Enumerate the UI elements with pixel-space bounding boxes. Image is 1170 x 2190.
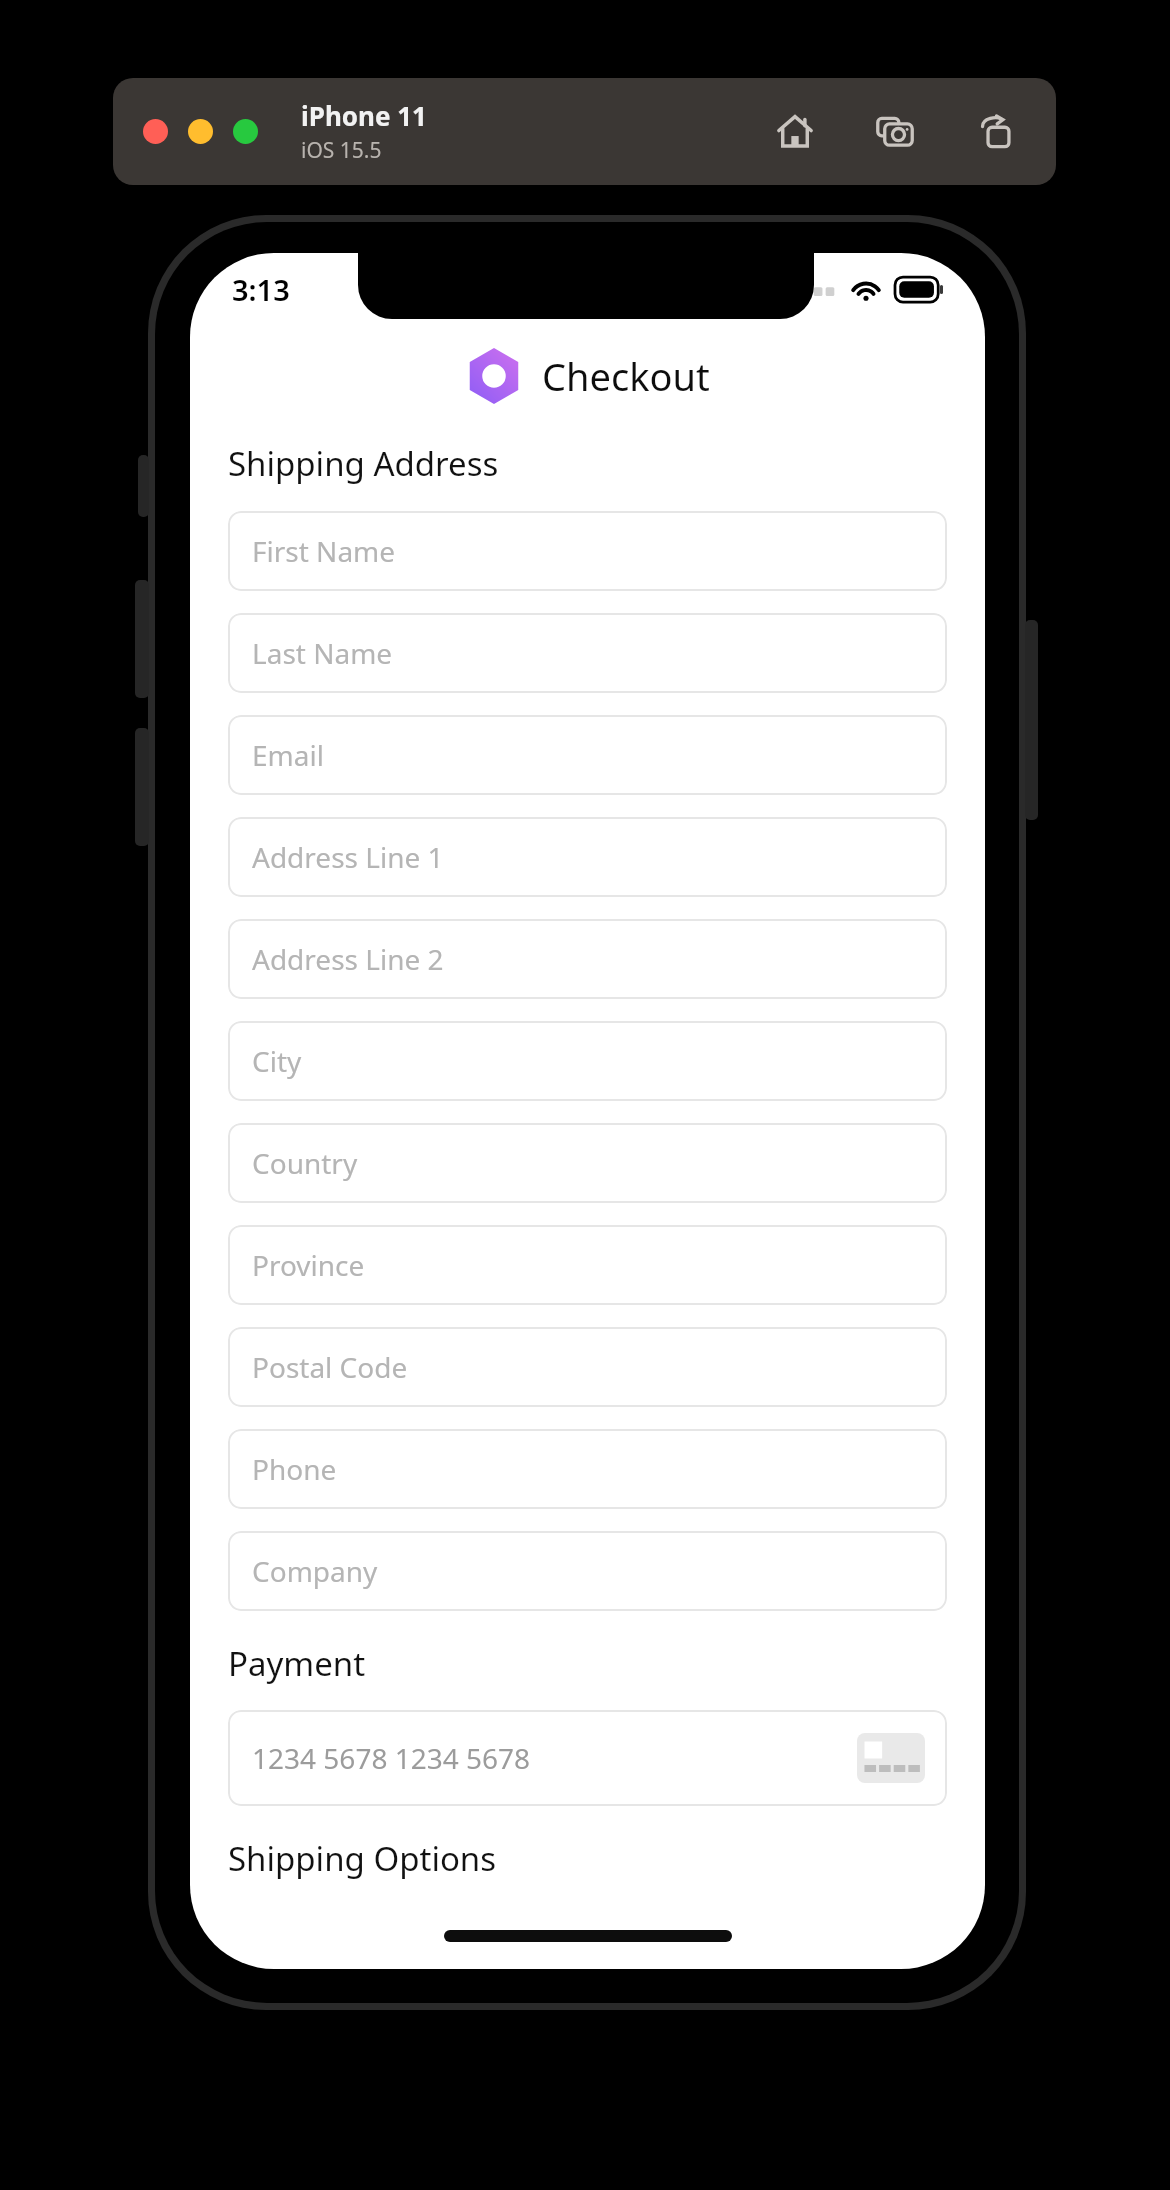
button[interactable]: Rotate [964, 101, 1026, 163]
staticText: Address Line 1 [252, 838, 444, 876]
staticText: Email [252, 736, 324, 774]
staticText: City [252, 1042, 302, 1080]
staticText: Postal Code [252, 1348, 408, 1386]
staticText: iOS 15.5 [301, 136, 382, 165]
button[interactable]: Postal Code [228, 1327, 947, 1407]
staticText: iPhone 11 [301, 98, 427, 133]
button[interactable]: Email [228, 715, 947, 795]
staticText: Checkout [542, 350, 710, 402]
button[interactable]: Address Line 1 [228, 817, 947, 897]
button[interactable]: Address Line 2 [228, 919, 947, 999]
staticText: First Name [252, 532, 396, 570]
staticText: Province [252, 1246, 365, 1284]
staticText: Address Line 2 [252, 940, 444, 978]
staticText: 1234 5678 1234 5678 [252, 1739, 531, 1777]
staticText: Last Name [252, 634, 393, 672]
button[interactable]: Last Name [228, 613, 947, 693]
button[interactable]: Close [143, 119, 168, 144]
button[interactable]: Company [228, 1531, 947, 1611]
staticText: Shipping Address [228, 441, 499, 486]
button[interactable]: Country [228, 1123, 947, 1203]
button[interactable]: 1234 5678 1234 5678 [228, 1710, 947, 1806]
button[interactable]: Minimize [188, 119, 213, 144]
button[interactable]: Province [228, 1225, 947, 1305]
button[interactable]: Phone [228, 1429, 947, 1509]
button[interactable]: City [228, 1021, 947, 1101]
staticText: Shipping Options [228, 1836, 497, 1881]
button[interactable]: Home [764, 101, 826, 163]
button[interactable]: Screenshot [864, 101, 926, 163]
staticText: Company [252, 1552, 378, 1590]
staticText: Country [252, 1144, 358, 1182]
staticText: Phone [252, 1450, 337, 1488]
button[interactable]: Maximize [233, 119, 258, 144]
button[interactable]: First Name [228, 511, 947, 591]
staticText: 3:13 [232, 270, 290, 309]
staticText: Payment [228, 1641, 366, 1686]
